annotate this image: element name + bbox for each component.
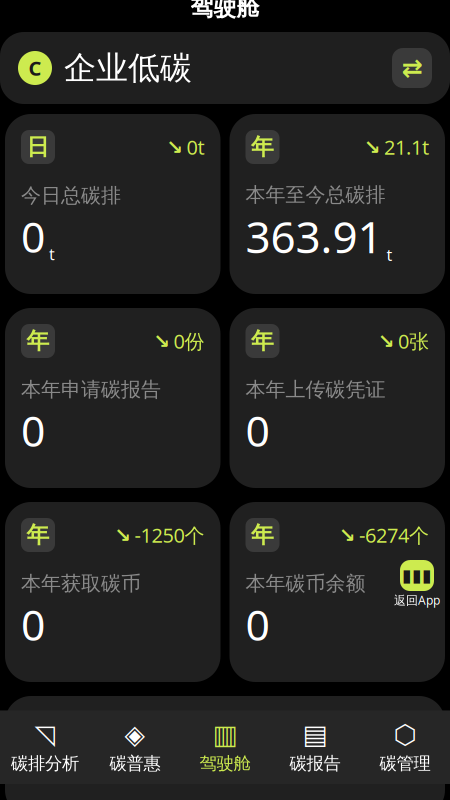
button[interactable]: ◈	[90, 715, 180, 778]
staticText: 驾驶舱	[190, 0, 259, 22]
button[interactable]: 返回App	[394, 560, 450, 608]
staticText: ↘	[166, 136, 183, 158]
staticText: t	[49, 243, 55, 265]
staticText: ↘	[153, 330, 170, 352]
staticText: 日	[26, 133, 49, 161]
staticText: 人均碳排	[69, 715, 161, 743]
button[interactable]: 年	[5, 502, 220, 682]
staticText: -6274个	[359, 522, 429, 548]
staticText: ▮▮▮	[402, 566, 432, 585]
staticText: 本年至今总碳排	[245, 182, 385, 207]
staticText: 本年碳币余额	[245, 571, 365, 596]
staticText: 0	[21, 596, 45, 653]
staticText: 0张	[398, 328, 429, 354]
staticText: t	[386, 244, 392, 265]
staticText: 碳普惠	[109, 753, 160, 774]
staticText: 年	[251, 327, 274, 355]
button[interactable]: 切换企业	[392, 48, 432, 88]
staticText: ⇄	[401, 54, 422, 82]
staticText: 0	[21, 208, 45, 265]
staticText: 0份	[173, 328, 204, 354]
button[interactable]: 年	[5, 308, 220, 488]
staticText: 今日总碳排	[21, 183, 121, 208]
staticText: C	[28, 55, 41, 81]
staticText: ↘	[339, 524, 356, 546]
staticText: 碳报告	[289, 753, 340, 774]
staticText: 本年上传碳凭证	[245, 377, 385, 402]
button[interactable]: 年	[5, 696, 445, 800]
button[interactable]: ▤	[270, 715, 360, 778]
staticText: ↘	[114, 524, 131, 546]
button[interactable]: ◹	[0, 715, 90, 778]
staticText: 0t	[186, 134, 204, 160]
staticText: 年	[26, 715, 49, 743]
button[interactable]: ▥	[180, 715, 270, 778]
button[interactable]: 年	[229, 308, 445, 488]
staticText: ▥	[212, 719, 237, 750]
staticText: ↘	[378, 330, 395, 352]
staticText: 本年申请碳报告	[21, 377, 161, 402]
staticText: 0	[245, 596, 269, 653]
staticText: 0	[21, 402, 45, 459]
staticText: 年	[251, 521, 274, 549]
button[interactable]: 日	[5, 114, 220, 294]
staticText: 驾驶舱	[199, 753, 250, 774]
button[interactable]: ⬡	[360, 715, 450, 778]
staticText: 年	[26, 521, 49, 549]
staticText: 本年获取碳币	[21, 571, 141, 596]
button[interactable]: 年	[229, 114, 445, 294]
button[interactable]: 年	[229, 502, 445, 682]
staticText: 0	[245, 402, 269, 459]
staticText: ◹	[34, 719, 55, 750]
staticText: ◈	[124, 719, 145, 750]
staticText: 363.91	[245, 207, 382, 265]
staticText: 年	[26, 327, 49, 355]
staticText: 21.1t	[384, 134, 429, 160]
staticText: 碳管理	[379, 753, 430, 774]
staticText: 返回App	[394, 592, 440, 608]
staticText: -1250个	[134, 522, 204, 548]
staticText: 企业低碳	[64, 48, 192, 88]
staticText: 碳排分析	[11, 753, 79, 774]
staticText: ⬡	[393, 719, 416, 750]
staticText: ▤	[302, 719, 327, 750]
staticText: ↘	[364, 136, 381, 158]
staticText: 年	[251, 133, 274, 161]
